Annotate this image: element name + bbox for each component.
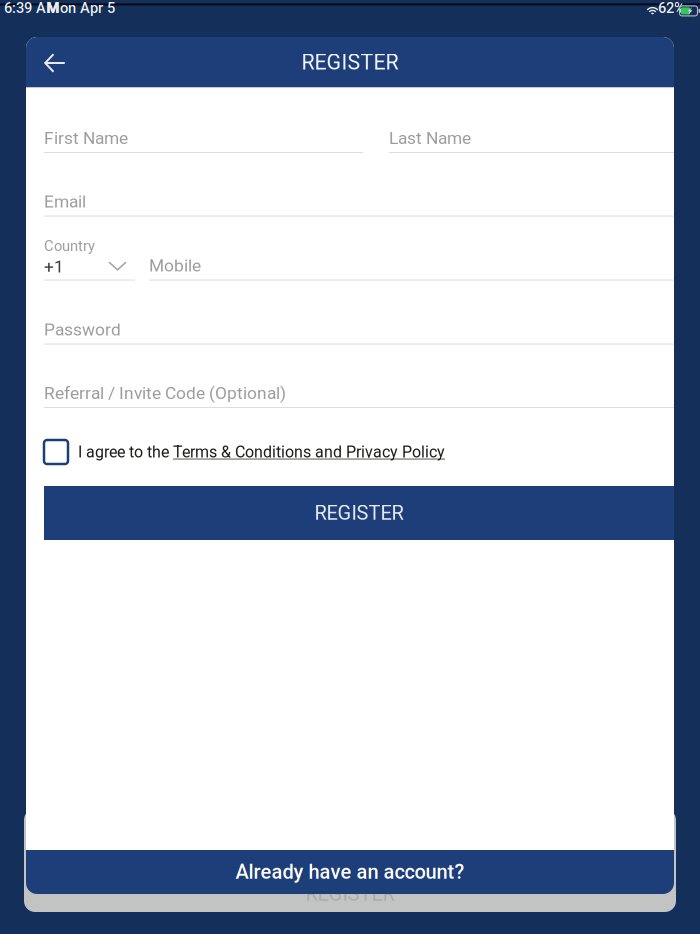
staticText: Already have an account? [235, 860, 464, 884]
button[interactable]: Back [30, 39, 80, 87]
staticText: REGISTER [301, 50, 398, 75]
staticText: +1 [44, 256, 64, 277]
button[interactable]: REGISTER [44, 486, 674, 540]
staticText: Password [44, 319, 121, 340]
button[interactable]: I agree to the Terms & Conditions and Pr… [44, 440, 445, 464]
staticText: Last Name [389, 128, 471, 148]
staticText: Mobile [149, 255, 201, 276]
staticText: Country [44, 237, 95, 255]
staticText: REGISTER [305, 882, 394, 906]
staticText: Referral / Invite Code (Optional) [44, 383, 286, 403]
button[interactable]: Already have an account? [26, 850, 674, 894]
staticText: Mon Apr 5 [47, 0, 115, 17]
staticText: 62% [658, 0, 685, 17]
staticText: First Name [44, 128, 128, 148]
staticText: Email [44, 191, 86, 212]
staticText: 6:39 AM [4, 0, 59, 17]
staticText: I agree to the Terms & Conditions and Pr… [78, 443, 445, 461]
staticText: REGISTER [314, 501, 403, 525]
